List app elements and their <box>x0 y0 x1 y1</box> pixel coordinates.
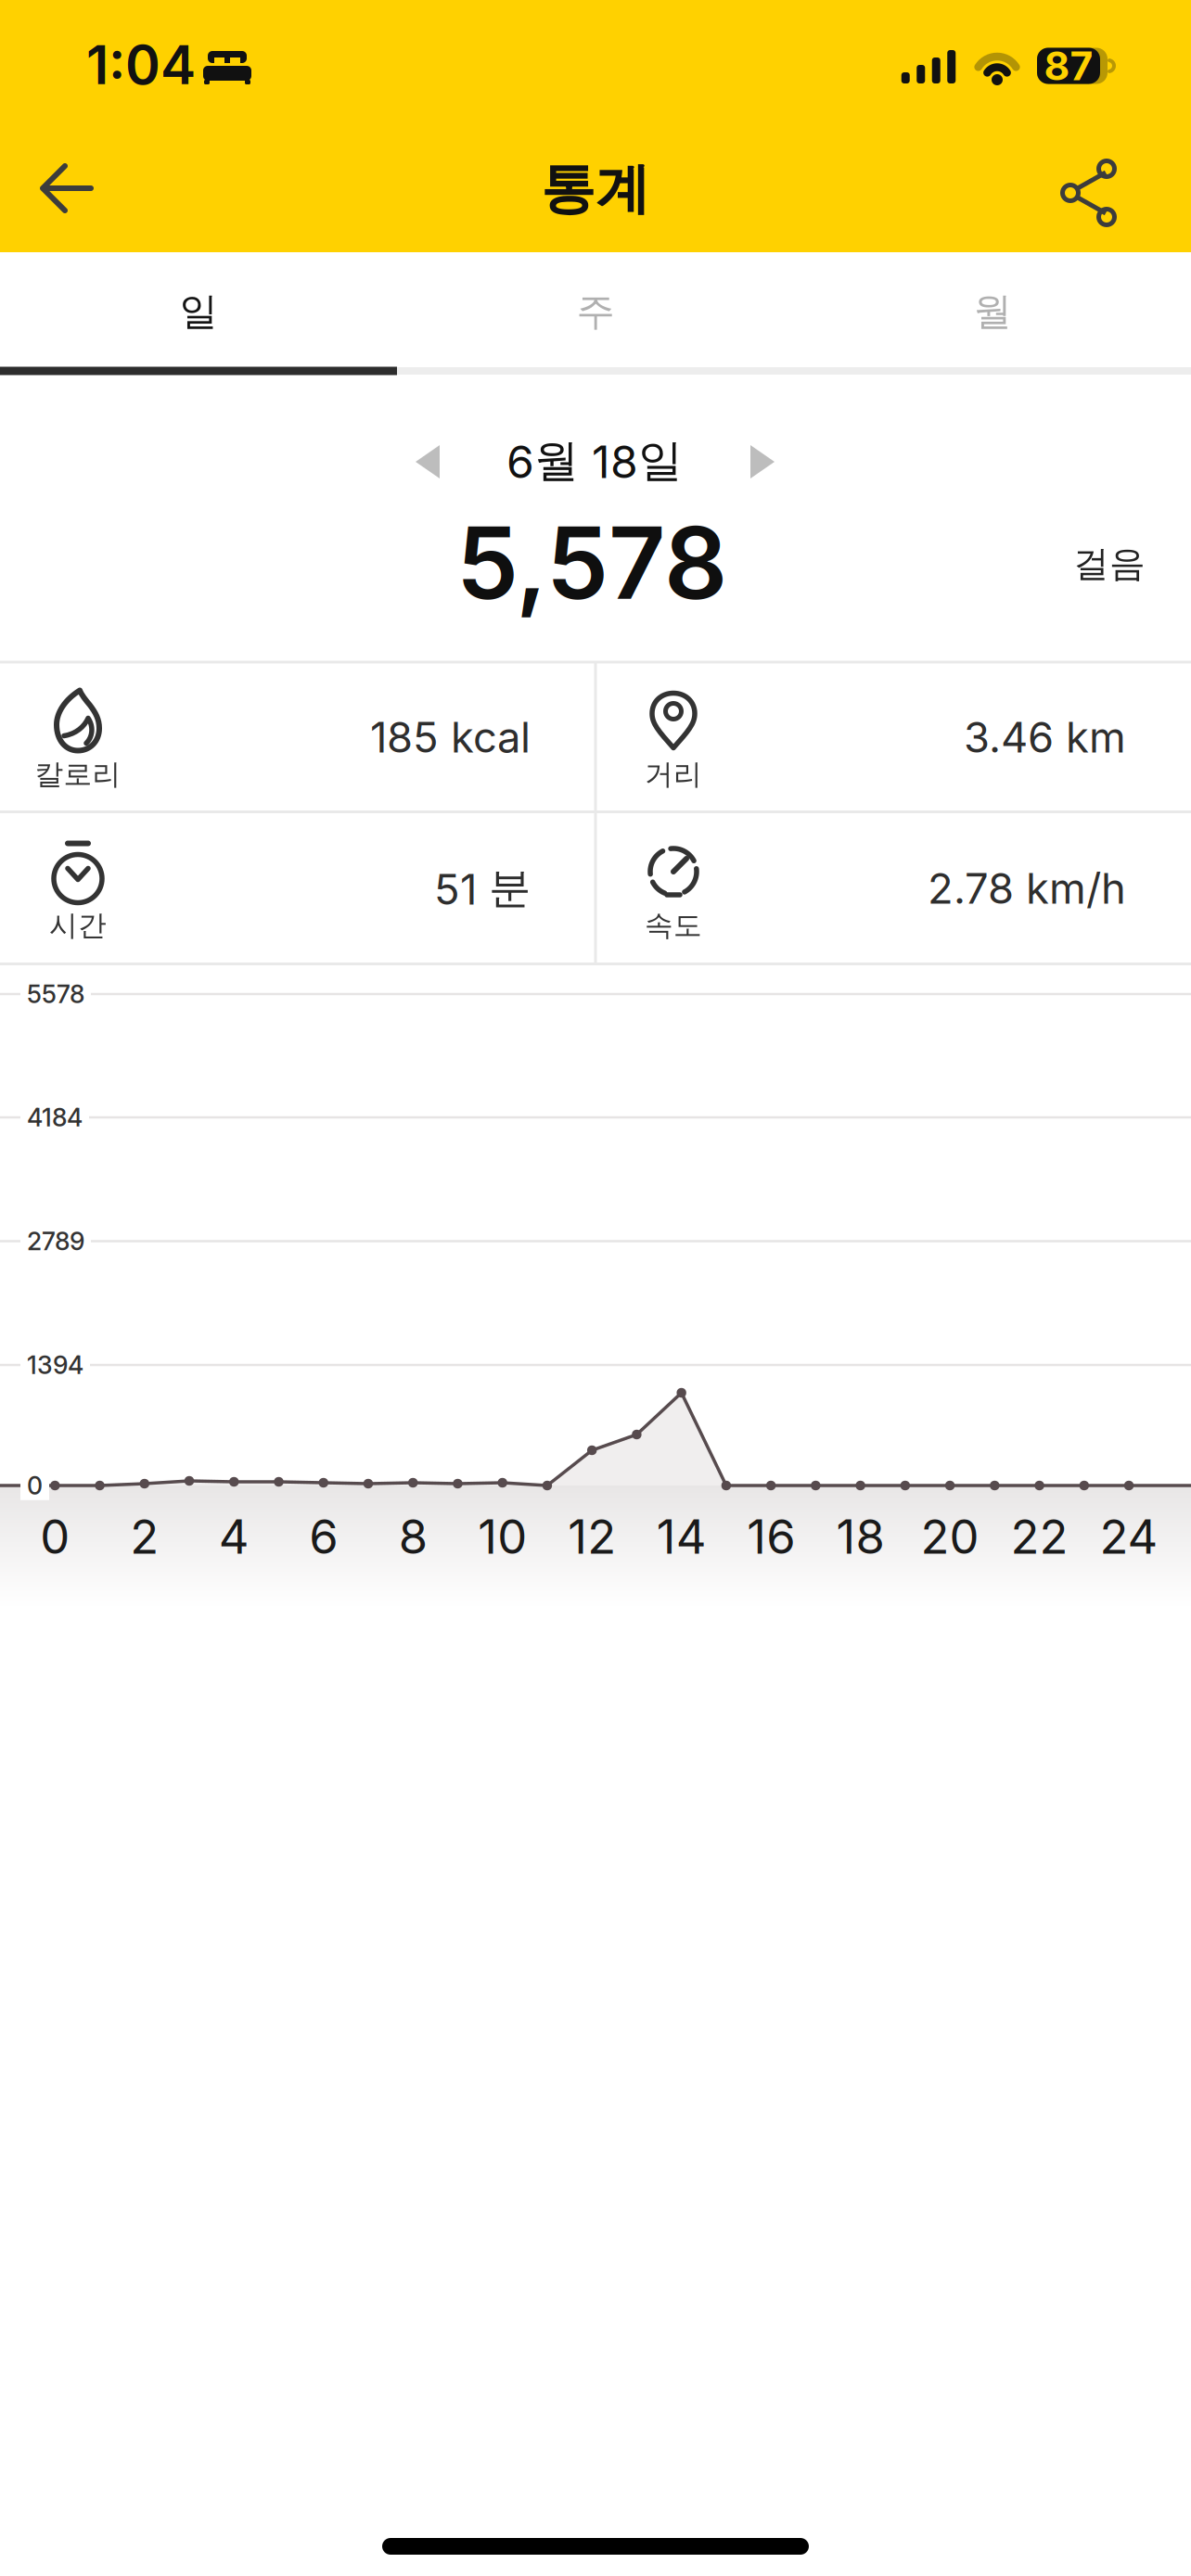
staticText: 51 분 <box>434 863 531 914</box>
staticText: 4 <box>219 1509 249 1564</box>
staticText: 2789 <box>27 1227 84 1256</box>
staticText: 8 <box>399 1509 427 1564</box>
button[interactable] <box>33 159 100 218</box>
staticText: 6 <box>309 1509 338 1564</box>
button[interactable] <box>737 441 778 482</box>
staticText: 칼로리 <box>35 757 121 792</box>
staticText: 87 <box>1044 42 1093 89</box>
button[interactable] <box>412 441 453 482</box>
staticText: 24 <box>1100 1509 1158 1564</box>
staticText: 12 <box>568 1509 616 1564</box>
staticText: 시간 <box>49 908 107 943</box>
staticText: 10 <box>478 1509 527 1564</box>
staticText: 6월 18일 <box>506 434 683 488</box>
staticText: 1394 <box>27 1350 83 1380</box>
staticText: 0 <box>40 1509 70 1564</box>
staticText: 16 <box>747 1509 795 1564</box>
button[interactable]: 월 <box>794 254 1191 369</box>
staticText: 1:04 <box>86 34 196 96</box>
staticText: 0 <box>27 1471 43 1500</box>
staticText: 20 <box>921 1509 979 1564</box>
staticText: 14 <box>656 1509 707 1564</box>
staticText: 3.46 km <box>964 712 1126 762</box>
staticText: 속도 <box>645 908 702 943</box>
staticText: 185 kcal <box>370 712 531 762</box>
staticText: 일 <box>179 288 218 335</box>
button[interactable]: 주 <box>397 254 794 369</box>
staticText: 주 <box>576 288 615 335</box>
staticText: 2 <box>130 1509 159 1564</box>
staticText: 월 <box>973 288 1012 335</box>
button[interactable] <box>1061 165 1121 221</box>
staticText: 거리 <box>645 757 702 792</box>
staticText: 통계 <box>541 156 650 223</box>
staticText: 4184 <box>27 1103 83 1132</box>
staticText: 5,578 <box>456 505 727 621</box>
staticText: 5578 <box>27 979 84 1009</box>
staticText: 걸음 <box>1073 542 1146 586</box>
button[interactable]: 일 <box>0 254 397 369</box>
staticText: 22 <box>1011 1509 1068 1564</box>
staticText: 18 <box>836 1509 885 1564</box>
staticText: 2.78 km/h <box>928 864 1126 913</box>
